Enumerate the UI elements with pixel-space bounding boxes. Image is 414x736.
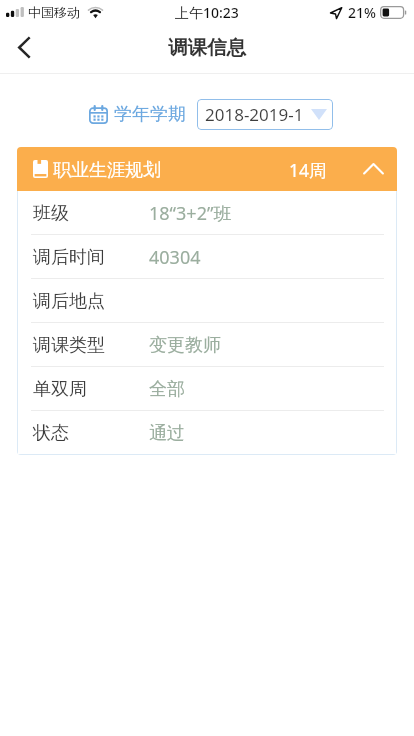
staticText: 学年学期: [114, 103, 186, 126]
staticText: 调课类型: [33, 334, 105, 357]
staticText: 通过: [149, 422, 185, 445]
staticText: 状态: [33, 422, 69, 445]
button[interactable]: 单双周: [17, 367, 397, 411]
staticText: 18“3+2”班: [149, 201, 232, 226]
button[interactable]: Back: [0, 24, 48, 70]
staticText: 单双周: [33, 378, 87, 401]
button[interactable]: 班级: [17, 191, 397, 235]
button[interactable]: 职业生涯规划: [17, 147, 397, 191]
staticText: 全部: [149, 378, 185, 401]
staticText: 40304: [149, 245, 201, 270]
staticText: 中国移动: [28, 4, 80, 20]
staticText: 21%: [348, 3, 376, 22]
staticText: 14周: [289, 158, 327, 182]
staticText: 调后地点: [33, 290, 105, 313]
staticText: 调后时间: [33, 246, 105, 269]
staticText: 2018-2019-1: [205, 103, 304, 126]
staticText: 上午10:23: [175, 3, 239, 22]
button[interactable]: 2018-2019-1: [197, 99, 333, 130]
staticText: 变更教师: [149, 334, 221, 357]
button[interactable]: 调后地点: [17, 279, 397, 323]
staticText: 调课信息: [168, 35, 246, 60]
button[interactable]: 调课类型: [17, 323, 397, 367]
staticText: 职业生涯规划: [53, 159, 161, 182]
button[interactable]: 调后时间: [17, 235, 397, 279]
staticText: 班级: [33, 202, 69, 225]
button[interactable]: 状态: [17, 411, 397, 455]
